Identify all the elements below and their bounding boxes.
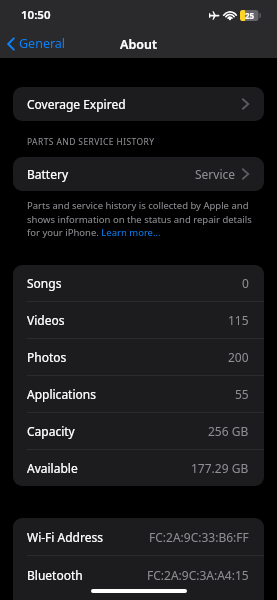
staticText: PARTS AND SERVICE HISTORY bbox=[27, 136, 155, 148]
staticText: Applications bbox=[27, 386, 96, 402]
button[interactable]: Videos bbox=[13, 302, 264, 339]
staticText: FC:2A:9C:3A:A4:15 bbox=[147, 567, 249, 583]
staticText: 25 bbox=[245, 10, 255, 21]
staticText: 55 bbox=[235, 386, 249, 402]
staticText: Parts and service history is collected b… bbox=[27, 199, 253, 238]
button[interactable]: Photos bbox=[13, 339, 264, 376]
staticText: Bluetooth bbox=[27, 567, 83, 583]
staticText: Available bbox=[27, 460, 78, 476]
staticText: Service bbox=[195, 166, 236, 182]
staticText: Coverage Expired bbox=[27, 96, 126, 112]
staticText: General bbox=[19, 35, 66, 52]
staticText: Battery bbox=[27, 166, 69, 182]
staticText: Wi-Fi Address bbox=[27, 529, 103, 545]
button[interactable]: General bbox=[7, 35, 66, 52]
staticText: 115 bbox=[228, 312, 249, 328]
staticText: 10:50 bbox=[21, 7, 51, 23]
staticText: Capacity bbox=[27, 423, 75, 439]
staticText: Photos bbox=[27, 349, 67, 365]
button[interactable]: Bluetooth bbox=[13, 556, 264, 593]
button[interactable]: Songs bbox=[13, 265, 264, 302]
button[interactable]: Applications bbox=[13, 376, 264, 413]
button[interactable]: Available bbox=[13, 450, 264, 486]
staticText: 0 bbox=[242, 275, 249, 291]
button[interactable]: Wi-Fi Address bbox=[13, 518, 264, 556]
staticText: 177.29 GB bbox=[191, 460, 249, 476]
staticText: Songs bbox=[27, 275, 62, 291]
staticText: 256 GB bbox=[208, 423, 249, 439]
button[interactable]: Coverage Expired bbox=[13, 87, 264, 121]
button[interactable]: Capacity bbox=[13, 413, 264, 450]
staticText: 200 bbox=[228, 349, 249, 365]
staticText: Videos bbox=[27, 312, 65, 328]
staticText: About bbox=[120, 36, 157, 53]
staticText: FC:2A:9C:33:B6:FF bbox=[149, 529, 249, 545]
button[interactable]: Battery bbox=[13, 157, 264, 191]
